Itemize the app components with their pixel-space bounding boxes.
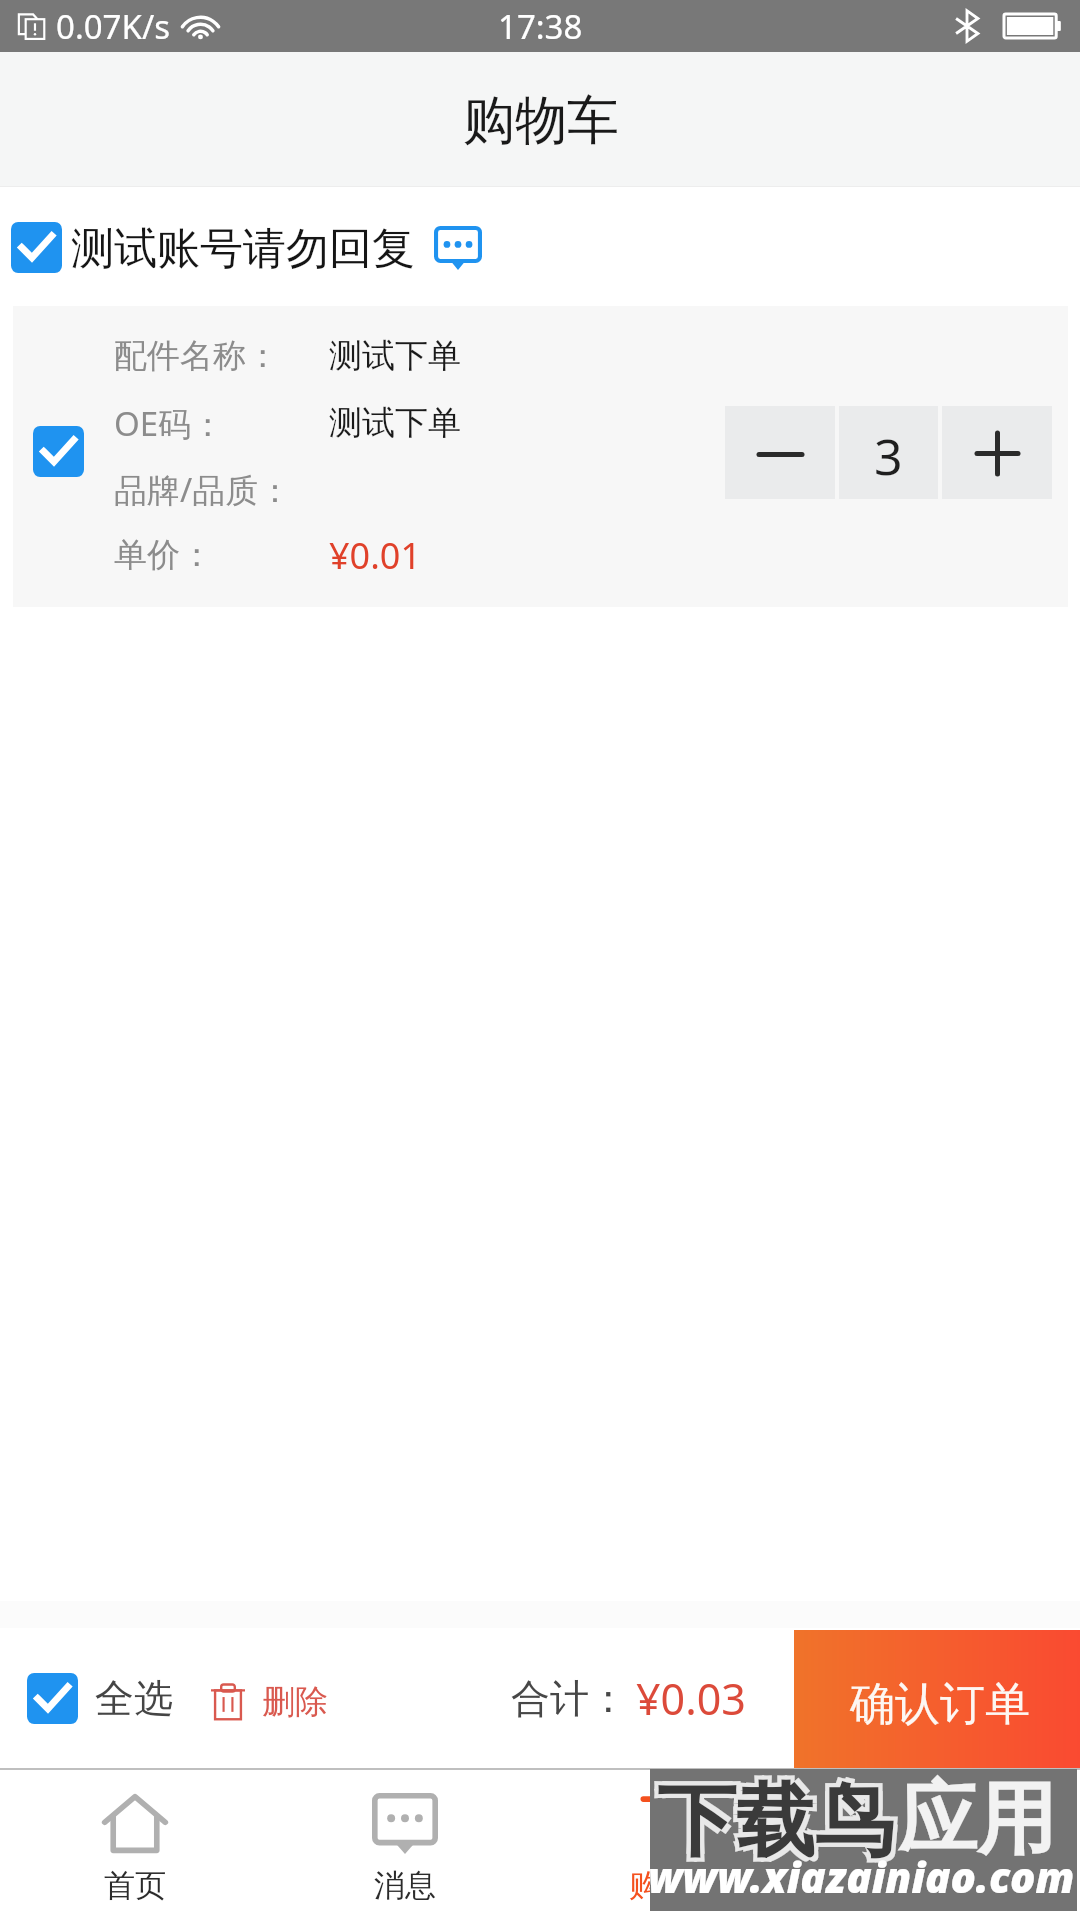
button[interactable]: Increase quantity <box>942 406 1052 499</box>
staticText: 下载鸟 <box>661 1768 898 1868</box>
staticText: 测试下单 <box>329 402 461 444</box>
staticText: 全选 <box>95 1674 173 1723</box>
button[interactable]: Select item <box>13 306 1068 607</box>
staticText: 我的 <box>914 1866 976 1905</box>
staticText: 17:38 <box>498 4 583 49</box>
button[interactable]: 3 <box>540 1770 810 1920</box>
staticText: 首页 <box>104 1866 166 1905</box>
button[interactable]: 删除 <box>211 1677 328 1719</box>
staticText: 0.07K/s <box>56 4 170 49</box>
staticText: 配件名称： <box>114 335 279 377</box>
staticText: 消息 <box>374 1866 436 1905</box>
button[interactable]: 测试账号请勿回复 <box>0 192 1080 302</box>
staticText: 下载鸟 <box>661 1776 898 1876</box>
staticText: ¥0.01 <box>329 531 422 580</box>
staticText: ¥0.03 <box>636 1669 746 1728</box>
staticText: 确认订单 <box>850 1676 1030 1733</box>
button[interactable]: Decrease quantity <box>725 406 835 499</box>
button[interactable]: 全选 <box>27 1673 173 1724</box>
staticText: OE码： <box>114 401 225 446</box>
staticText: 品牌/品质： <box>114 467 292 512</box>
staticText: 购物车 <box>463 88 619 154</box>
button[interactable]: 3 <box>839 406 938 499</box>
button[interactable]: Select item <box>33 426 84 477</box>
staticText: 删除 <box>262 1681 328 1723</box>
staticText: 下载鸟 <box>657 1772 894 1872</box>
staticText: 下载鸟 <box>653 1768 890 1868</box>
staticText: 下载鸟 <box>653 1776 890 1876</box>
staticText: 合计： <box>511 1674 628 1723</box>
staticText: 测试账号请勿回复 <box>71 222 415 276</box>
staticText: 购物车 <box>629 1866 722 1905</box>
staticText: 单价： <box>114 534 213 576</box>
staticText: 3 <box>690 1786 704 1819</box>
button[interactable]: 首页 <box>0 1770 270 1920</box>
staticText: www.xiazainiao.com <box>648 1848 1075 1905</box>
button[interactable]: 确认订单 <box>794 1630 1080 1768</box>
staticText: 3 <box>874 422 903 490</box>
button[interactable]: 消息 <box>270 1770 540 1920</box>
staticText: 应用 <box>898 1770 1056 1870</box>
button[interactable]: 我的 <box>810 1770 1080 1920</box>
button[interactable]: Chat with seller <box>434 226 482 270</box>
staticText: 测试下单 <box>329 335 461 377</box>
